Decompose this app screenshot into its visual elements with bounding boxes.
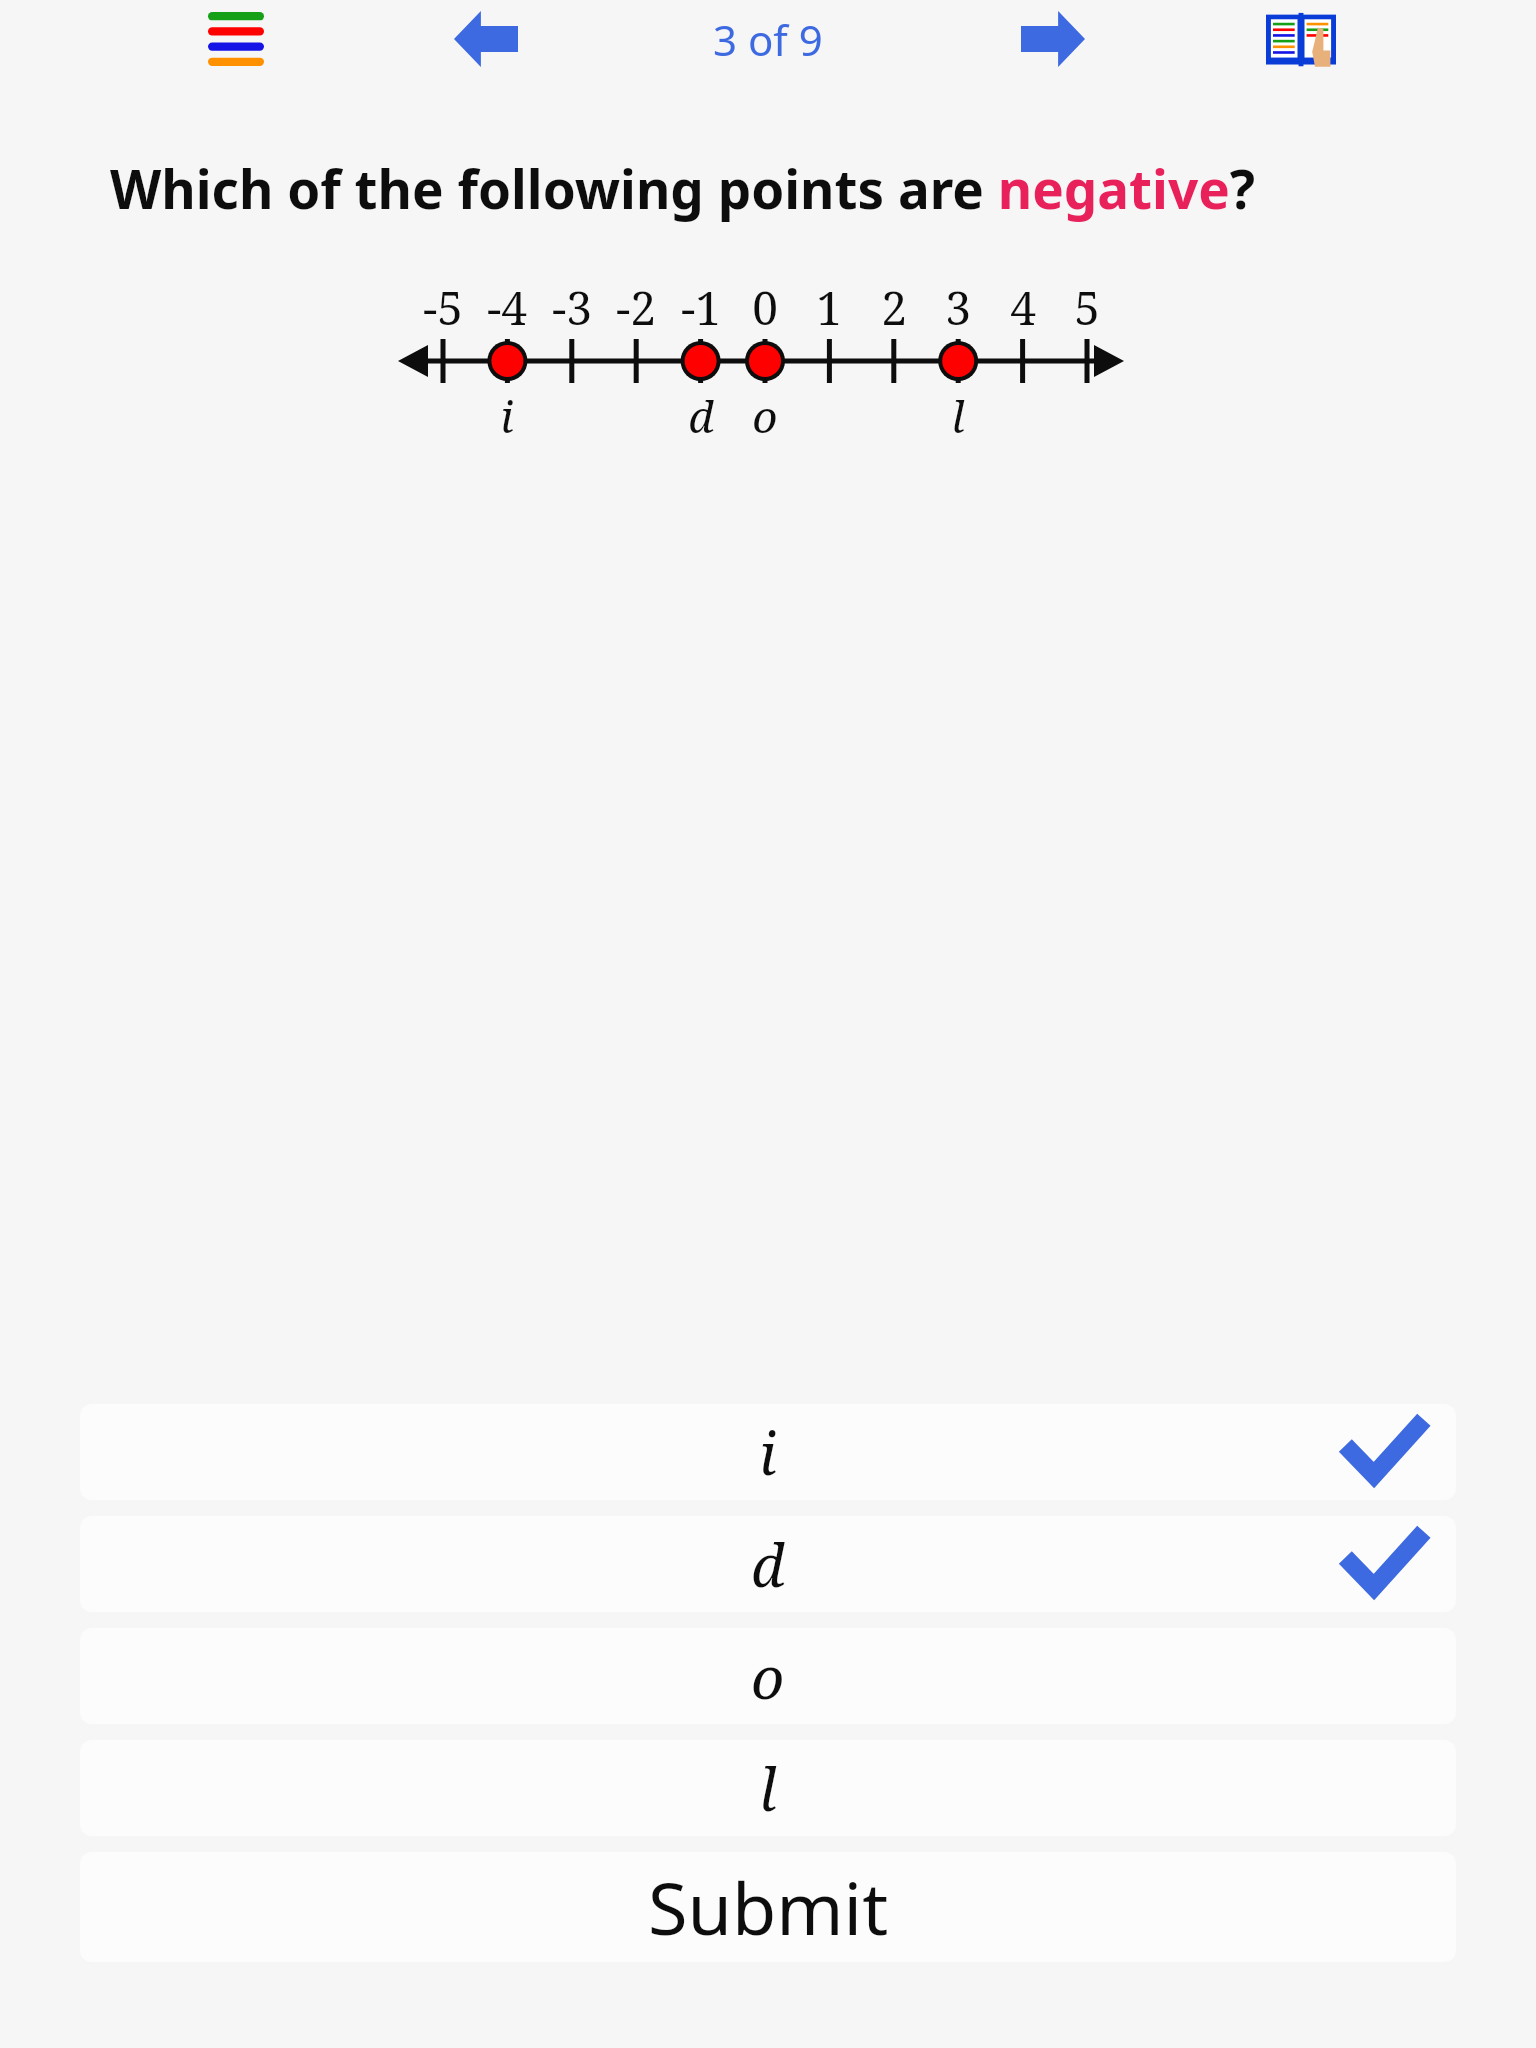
staticText: 0	[752, 276, 778, 334]
button[interactable]: o	[80, 1628, 1456, 1724]
button[interactable]: i	[80, 1404, 1456, 1500]
staticText: o	[752, 386, 778, 446]
staticText: -1	[681, 276, 721, 334]
button[interactable]: Glossary	[1240, 0, 1362, 78]
staticText: i	[500, 386, 514, 446]
button[interactable]: Previous	[425, 0, 547, 78]
staticText: -2	[616, 276, 656, 334]
staticText: 5	[1074, 276, 1100, 334]
staticText: 3	[945, 276, 971, 334]
staticText: d	[751, 1525, 785, 1604]
staticText: -4	[487, 276, 527, 334]
button[interactable]: Menu	[178, 0, 294, 78]
staticText: i	[759, 1413, 777, 1492]
staticText: -3	[552, 276, 592, 334]
staticText: l	[759, 1749, 777, 1828]
staticText: o	[751, 1637, 785, 1716]
button[interactable]: Next	[992, 0, 1114, 78]
staticText: 2	[881, 276, 907, 334]
staticText: l	[951, 386, 965, 446]
staticText: Which of the following points are negati…	[110, 152, 1256, 224]
staticText: 1	[816, 276, 842, 334]
staticText: -5	[423, 276, 463, 334]
button[interactable]: Submit	[80, 1852, 1456, 1962]
staticText: Submit	[648, 1858, 889, 1956]
staticText: d	[688, 386, 714, 446]
button[interactable]: l	[80, 1740, 1456, 1836]
staticText: 4	[1010, 276, 1036, 334]
staticText: 3 of 9	[713, 11, 823, 68]
button[interactable]: d	[80, 1516, 1456, 1612]
